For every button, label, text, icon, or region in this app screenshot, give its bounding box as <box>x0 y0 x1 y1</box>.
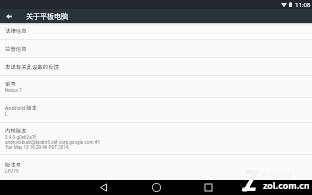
staticText: 型号 <box>5 80 16 88</box>
button[interactable]: Android 版本 <box>0 98 312 122</box>
staticText: 关于平板电脑 <box>26 11 68 21</box>
staticText: 3.4.0-g0e62a7f <box>5 135 36 140</box>
staticText: L <box>5 112 8 117</box>
staticText: 内核版本 <box>5 127 27 135</box>
staticText: 发送有关此设备的反馈 <box>5 63 59 71</box>
staticText: 法律信息 <box>5 27 27 35</box>
staticText: 监管信息 <box>5 45 27 53</box>
staticText: 11:08 <box>295 1 311 8</box>
button[interactable]: Home <box>146 180 166 195</box>
button[interactable]: Back <box>93 180 113 195</box>
button[interactable]: 法律信息 <box>0 23 312 39</box>
staticText: Android 版本 <box>5 104 38 112</box>
button[interactable]: Back <box>0 9 18 23</box>
button[interactable]: 监管信息 <box>0 40 312 57</box>
staticText: zol.com.cn <box>263 179 310 192</box>
staticText: Nexus 7 <box>5 88 22 93</box>
button[interactable]: 型号 <box>0 76 312 97</box>
staticText: LPV79 <box>5 169 19 174</box>
staticText: Tue May 13 16:20:46 PDT 2014 <box>5 145 69 150</box>
button[interactable]: Recent apps <box>198 180 218 195</box>
staticText: android-build@kpdm5.cbf.corp.google.com … <box>5 140 101 145</box>
button[interactable]: 版本号 <box>0 155 312 180</box>
staticText: 版本号 <box>5 161 22 169</box>
button[interactable]: 内核版本 <box>0 123 312 154</box>
button[interactable]: 发送有关此设备的反馈 <box>0 58 312 75</box>
